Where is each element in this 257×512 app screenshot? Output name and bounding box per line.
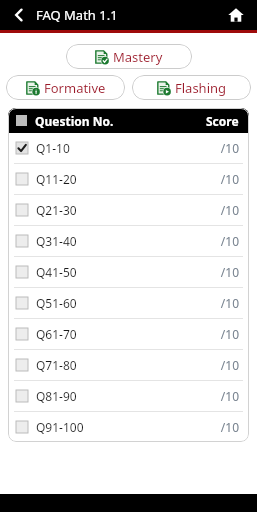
staticText: /10 — [220, 419, 239, 435]
staticText: /10 — [220, 264, 239, 280]
button[interactable]: Q51-60 — [8, 288, 249, 318]
button[interactable]: Q91-100 — [8, 412, 249, 442]
staticText: Q71-80 — [36, 357, 77, 373]
staticText: /10 — [220, 357, 239, 373]
button[interactable]: Q11-20 — [8, 164, 249, 194]
staticText: /10 — [220, 295, 239, 311]
button[interactable]: Q41-50 — [8, 257, 249, 287]
staticText: Q21-30 — [36, 202, 77, 218]
staticText: Q31-40 — [36, 233, 77, 249]
staticText: Q91-100 — [36, 419, 84, 435]
staticText: Q41-50 — [36, 264, 77, 280]
button[interactable]: Formative — [6, 75, 125, 100]
staticText: /10 — [220, 326, 239, 342]
staticText: /10 — [220, 202, 239, 218]
staticText: Score — [206, 113, 239, 129]
staticText: Q81-90 — [36, 388, 77, 404]
button[interactable]: Q21-30 — [8, 195, 249, 225]
staticText: FAQ Math 1.1 — [36, 6, 118, 24]
button[interactable]: Mastery — [66, 44, 192, 69]
button[interactable]: Q71-80 — [8, 350, 249, 380]
button[interactable]: Back — [6, 2, 32, 28]
staticText: Q1-10 — [36, 140, 70, 156]
button[interactable]: Q61-70 — [8, 319, 249, 349]
button[interactable]: Home — [223, 2, 249, 28]
staticText: Mastery — [113, 48, 163, 66]
staticText: Question No. — [35, 113, 114, 129]
staticText: /10 — [220, 171, 239, 187]
staticText: /10 — [220, 140, 239, 156]
staticText: Flashing — [175, 79, 227, 97]
staticText: /10 — [220, 233, 239, 249]
button[interactable]: Q1-10 — [8, 133, 249, 163]
staticText: Q11-20 — [36, 171, 77, 187]
button[interactable]: Q81-90 — [8, 381, 249, 411]
staticText: Q61-70 — [36, 326, 77, 342]
button[interactable]: Flashing — [132, 75, 251, 100]
staticText: Q51-60 — [36, 295, 77, 311]
staticText: Formative — [44, 79, 106, 97]
button[interactable]: Q31-40 — [8, 226, 249, 256]
staticText: /10 — [220, 388, 239, 404]
